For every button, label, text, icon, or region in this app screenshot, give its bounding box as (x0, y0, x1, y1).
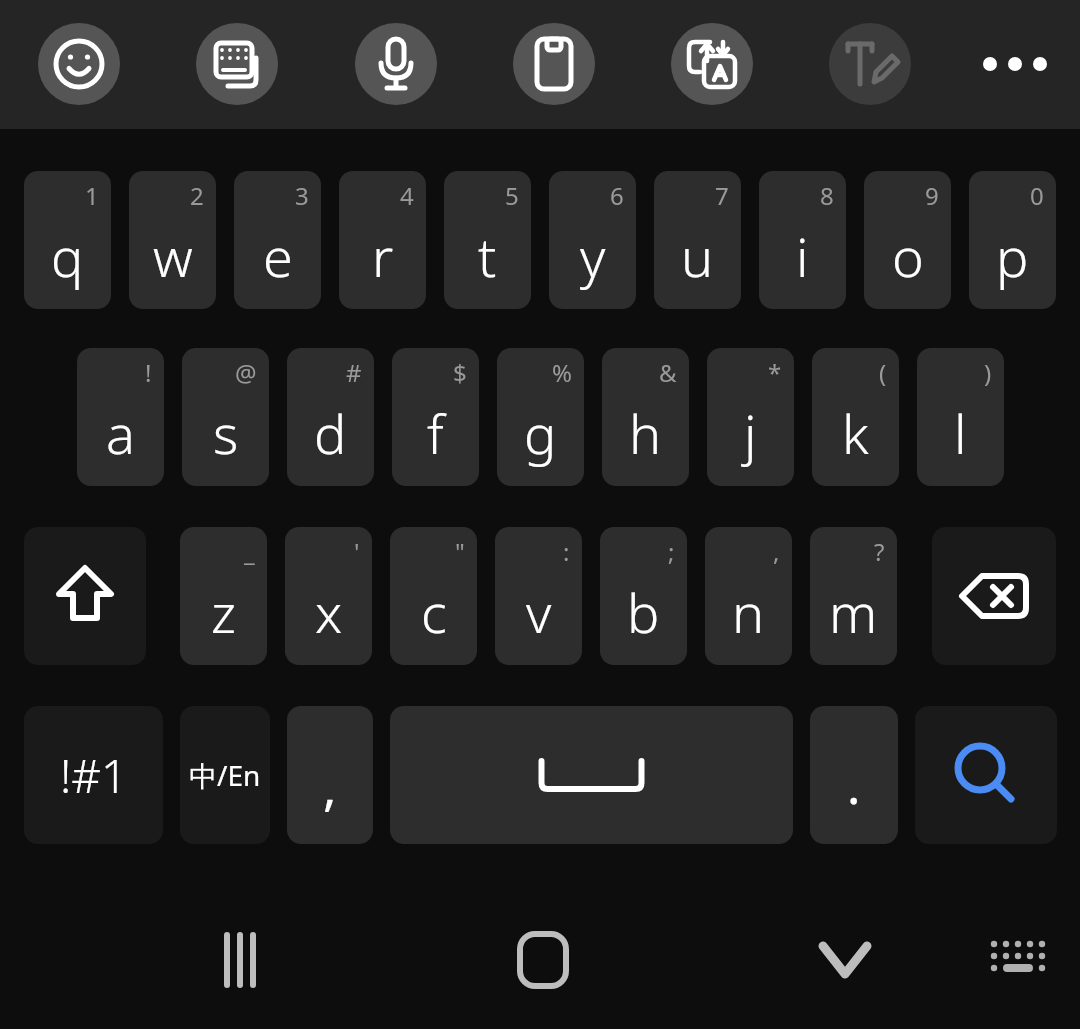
staticText: ! (145, 356, 152, 389)
button[interactable]: 5 (444, 171, 531, 309)
button[interactable]: _ (180, 527, 267, 665)
button[interactable]: Voice input (355, 23, 437, 105)
staticText: l (954, 396, 967, 470)
button[interactable]: : (495, 527, 582, 665)
staticText: $ (453, 356, 467, 389)
button[interactable]: " (390, 527, 477, 665)
button[interactable]: , (287, 706, 373, 844)
button[interactable]: @ (182, 348, 269, 486)
staticText: t (478, 219, 497, 293)
button[interactable]: Shift (24, 527, 146, 665)
staticText: 9 (925, 179, 939, 212)
staticText: ' (354, 535, 360, 568)
staticText: # (346, 356, 362, 389)
staticText: 2 (190, 179, 204, 212)
button[interactable]: !#1 (24, 706, 163, 844)
staticText: _ (244, 535, 255, 568)
staticText: u (681, 219, 714, 293)
button[interactable]: Search (915, 706, 1057, 844)
button[interactable]: ' (285, 527, 372, 665)
staticText: 4 (400, 179, 414, 212)
staticText: 中/En (189, 756, 261, 794)
staticText: n (732, 575, 765, 649)
staticText: p (996, 219, 1029, 293)
button[interactable]: Choose input method (968, 910, 1068, 1010)
button[interactable]: More options (960, 24, 1070, 104)
button[interactable]: 3 (234, 171, 321, 309)
button[interactable]: 6 (549, 171, 636, 309)
staticText: ? (874, 535, 885, 568)
button[interactable]: 7 (654, 171, 741, 309)
button[interactable]: 1 (24, 171, 111, 309)
staticText: k (842, 396, 869, 470)
button[interactable]: & (602, 348, 689, 486)
staticText: q (51, 219, 84, 293)
button[interactable]: ) (917, 348, 1004, 486)
staticText: ; (668, 535, 675, 568)
button[interactable]: Translate (671, 23, 753, 105)
staticText: * (768, 356, 782, 389)
button[interactable]: * (707, 348, 794, 486)
staticText: x (315, 575, 343, 649)
staticText: y (580, 219, 606, 293)
button[interactable]: Handwriting (829, 23, 911, 105)
staticText: 1 (85, 179, 99, 212)
button[interactable]: Clipboard (513, 23, 595, 105)
staticText: !#1 (60, 744, 128, 807)
staticText: 5 (505, 179, 519, 212)
staticText: 6 (610, 179, 624, 212)
button[interactable]: $ (392, 348, 479, 486)
staticText: d (314, 396, 347, 470)
staticText: h (629, 396, 662, 470)
button[interactable]: Backspace (932, 527, 1056, 665)
staticText: e (263, 219, 293, 293)
button[interactable]: 2 (129, 171, 216, 309)
button[interactable]: % (497, 348, 584, 486)
button[interactable]: 8 (759, 171, 846, 309)
button[interactable]: . (810, 706, 898, 844)
staticText: z (211, 575, 237, 649)
button[interactable]: ( (812, 348, 899, 486)
button[interactable]: Home (483, 905, 603, 1015)
staticText: o (892, 219, 924, 293)
button[interactable]: , (705, 527, 792, 665)
button[interactable]: 4 (339, 171, 426, 309)
staticText: g (524, 396, 557, 470)
staticText: m (829, 575, 878, 649)
staticText: b (627, 575, 660, 649)
button[interactable]: Hide keyboard (785, 905, 905, 1015)
staticText: : (563, 535, 570, 568)
button[interactable]: Space (390, 706, 793, 844)
staticText: . (847, 751, 861, 819)
staticText: " (455, 535, 465, 568)
staticText: , (323, 753, 337, 821)
staticText: ( (879, 356, 887, 389)
staticText: 3 (295, 179, 309, 212)
staticText: s (213, 396, 239, 470)
staticText: , (773, 535, 780, 568)
button[interactable]: 9 (864, 171, 951, 309)
staticText: & (659, 356, 677, 389)
staticText: @ (235, 356, 257, 389)
staticText: 0 (1030, 179, 1044, 212)
button[interactable]: Switch keyboard (196, 23, 278, 105)
staticText: j (744, 396, 757, 470)
button[interactable]: ; (600, 527, 687, 665)
button[interactable]: ! (77, 348, 164, 486)
staticText: c (421, 575, 447, 649)
staticText: v (526, 575, 552, 649)
staticText: a (106, 396, 135, 470)
button[interactable]: # (287, 348, 374, 486)
button[interactable]: Emoji (38, 23, 120, 105)
button[interactable]: 0 (969, 171, 1056, 309)
button[interactable]: ? (810, 527, 897, 665)
staticText: f (427, 396, 444, 470)
button[interactable]: 中/En (180, 706, 270, 844)
staticText: r (372, 219, 394, 293)
staticText: % (552, 356, 572, 389)
staticText: ) (984, 356, 992, 389)
staticText: w (153, 219, 193, 293)
button[interactable]: Recent apps (180, 905, 300, 1015)
staticText: 7 (715, 179, 729, 212)
staticText: 8 (820, 179, 834, 212)
